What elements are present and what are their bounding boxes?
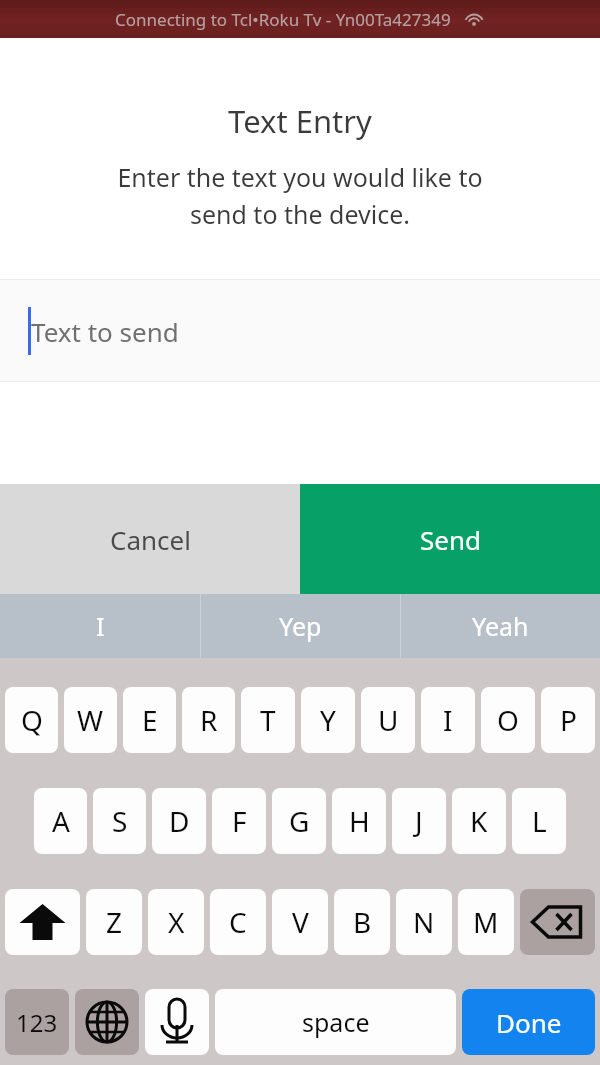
staticText: O [497, 701, 519, 739]
button[interactable]: G [269, 787, 329, 855]
button[interactable]: 123 [2, 988, 72, 1056]
button[interactable]: space [212, 988, 459, 1056]
button[interactable]: Send [300, 484, 600, 594]
button[interactable]: I [0, 594, 200, 658]
button[interactable]: C [207, 888, 269, 956]
staticText: F [232, 802, 247, 840]
staticText: K [470, 802, 488, 840]
button[interactable]: S [90, 787, 149, 855]
button[interactable]: F [209, 787, 269, 855]
staticText: J [415, 802, 423, 840]
staticText: G [289, 802, 310, 840]
staticText: T [260, 701, 276, 739]
staticText: Connecting to Tcl•Roku Tv - Yn00Ta427349 [115, 8, 451, 31]
staticText: 123 [16, 1006, 58, 1039]
staticText: I [96, 609, 105, 643]
button[interactable]: I [418, 686, 478, 754]
staticText: Cancel [110, 522, 191, 557]
button[interactable]: B [331, 888, 393, 956]
button[interactable]: Done [459, 988, 598, 1056]
staticText: space [302, 1005, 370, 1039]
button[interactable]: K [449, 787, 509, 855]
button[interactable]: E [120, 686, 179, 754]
staticText: L [532, 802, 547, 840]
staticText: Text to send [31, 314, 179, 349]
staticText: Z [106, 903, 123, 941]
staticText: N [413, 903, 435, 941]
staticText: Enter the text you would like to send to… [117, 160, 483, 231]
staticText: U [378, 701, 399, 739]
button[interactable]: Backspace [517, 888, 598, 956]
button[interactable]: Voice input [142, 988, 212, 1056]
button[interactable]: O [478, 686, 538, 754]
staticText: R [200, 701, 218, 739]
staticText: E [142, 701, 158, 739]
button[interactable]: N [393, 888, 455, 956]
staticText: S [112, 802, 128, 840]
button[interactable]: W [61, 686, 120, 754]
staticText: Yep [279, 609, 322, 643]
button[interactable]: U [358, 686, 418, 754]
staticText: Y [320, 701, 336, 739]
button[interactable]: Z [83, 888, 145, 956]
button[interactable]: Shift [2, 888, 83, 956]
staticText: Yeah [472, 609, 529, 643]
staticText: H [349, 802, 370, 840]
button[interactable]: Cancel [0, 484, 300, 594]
staticText: Send [420, 522, 481, 557]
staticText: B [353, 903, 372, 941]
staticText: P [560, 701, 577, 739]
button[interactable]: D [149, 787, 209, 855]
staticText: Q [21, 701, 43, 739]
button[interactable]: T [238, 686, 298, 754]
button[interactable]: Change keyboard [72, 988, 142, 1056]
button[interactable]: P [538, 686, 598, 754]
button[interactable]: H [329, 787, 389, 855]
other: Wi-Fi [463, 9, 485, 31]
staticText: I [443, 701, 453, 739]
button[interactable]: A [31, 787, 90, 855]
button[interactable]: V [269, 888, 331, 956]
staticText: C [229, 903, 247, 941]
button[interactable]: L [509, 787, 569, 855]
staticText: V [292, 903, 309, 941]
button[interactable]: J [389, 787, 449, 855]
button[interactable]: R [179, 686, 238, 754]
button[interactable]: Yep [201, 594, 400, 658]
button[interactable]: Y [298, 686, 358, 754]
button[interactable]: X [145, 888, 207, 956]
button[interactable]: Text to send [0, 280, 600, 381]
button[interactable]: Connecting to Tcl•Roku Tv - Yn00Ta427349 [0, 0, 600, 38]
staticText: M [473, 903, 499, 941]
staticText: Done [496, 1005, 562, 1040]
button[interactable]: M [455, 888, 517, 956]
button[interactable]: Yeah [401, 594, 600, 658]
staticText: A [52, 802, 70, 840]
staticText: D [169, 802, 190, 840]
button[interactable]: Q [2, 686, 61, 754]
staticText: X [168, 903, 185, 941]
staticText: Text Entry [228, 100, 372, 142]
staticText: W [77, 701, 104, 739]
